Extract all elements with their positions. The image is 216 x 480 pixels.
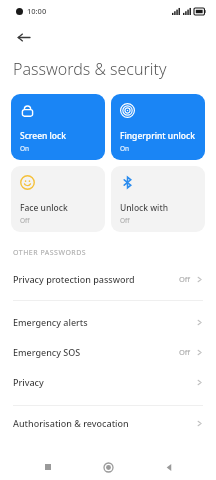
- staticText: Authorisation & revocation: [13, 417, 129, 429]
- staticText: On: [120, 144, 130, 153]
- button[interactable]: Emergency SOS: [0, 337, 216, 367]
- staticText: OTHER PASSWORDS: [13, 248, 87, 258]
- staticText: Off: [179, 347, 191, 357]
- button[interactable]: Back: [156, 454, 182, 480]
- staticText: Off: [179, 274, 191, 284]
- button[interactable]: Recents: [35, 454, 61, 480]
- staticText: Face unlock: [20, 202, 68, 214]
- staticText: Off: [120, 216, 130, 225]
- button[interactable]: Face unlock: [11, 166, 105, 232]
- button[interactable]: Unlock with Bluetooth: [111, 166, 205, 232]
- staticText: Emergency alerts: [13, 316, 88, 328]
- button[interactable]: Privacy protection password: [0, 264, 216, 294]
- staticText: 10:00: [27, 6, 47, 16]
- staticText: Unlock with Bluetooth: [120, 202, 201, 214]
- button[interactable]: Emergency alerts: [0, 307, 216, 337]
- staticText: Emergency SOS: [13, 346, 81, 358]
- staticText: Privacy protection password: [13, 273, 135, 285]
- button[interactable]: Authorisation & revocation: [0, 408, 216, 438]
- staticText: Fingerprint unlock: [120, 130, 195, 142]
- staticText: Privacy: [13, 376, 44, 388]
- staticText: Passwords & security: [13, 58, 167, 80]
- button[interactable]: Back: [8, 22, 38, 52]
- button[interactable]: Screen lock: [11, 94, 105, 160]
- button[interactable]: Fingerprint unlock: [111, 94, 205, 160]
- staticText: Off: [20, 216, 30, 225]
- staticText: Screen lock: [20, 130, 66, 142]
- button[interactable]: Home: [95, 454, 121, 480]
- staticText: On: [20, 144, 30, 153]
- button[interactable]: Privacy: [0, 367, 216, 397]
